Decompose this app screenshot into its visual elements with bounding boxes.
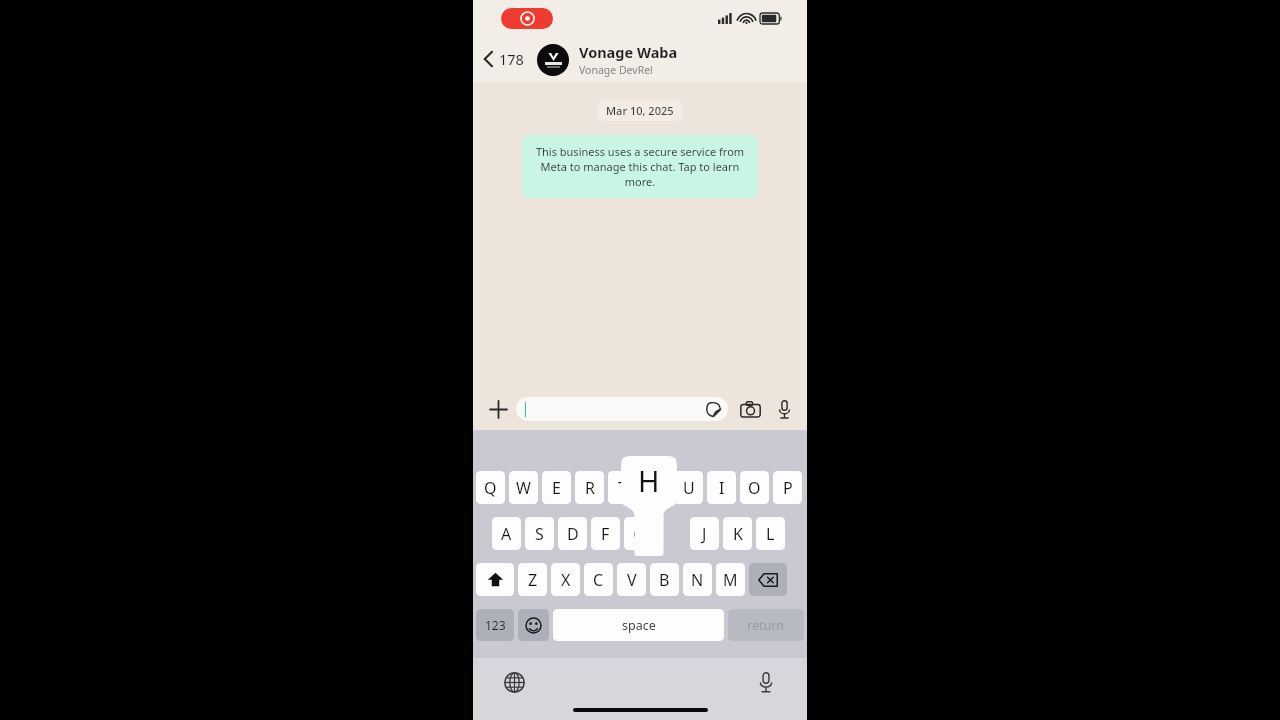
button[interactable]: This business uses a secure service from… [522,135,758,198]
staticText: 123 [485,617,506,633]
staticText: Z [528,569,538,591]
button[interactable]: V [617,563,646,596]
button[interactable]: Change keyboard language [498,666,530,698]
button[interactable]: L [756,517,785,550]
button[interactable]: Vonage Waba [537,42,807,77]
staticText: H [638,461,660,500]
button[interactable]: S [525,517,554,550]
button[interactable]: space [553,609,724,641]
button[interactable]: W [509,471,538,504]
button[interactable]: I [707,471,736,504]
staticText: space [622,617,656,634]
button[interactable]: Recording indicator [501,8,553,29]
button[interactable]: Voice message [770,395,798,423]
staticText: J [702,523,707,545]
button[interactable]: F [591,517,620,550]
button[interactable]: N [683,563,712,596]
button[interactable]: Z [518,563,547,596]
staticText: 178 [499,49,524,69]
button[interactable]: G [624,517,653,550]
staticText: D [567,523,579,545]
staticText: L [766,523,775,545]
staticText: F [601,523,610,545]
button[interactable]: O [740,471,769,504]
button[interactable]: return [728,609,804,641]
staticText: T [618,477,627,499]
staticText: return [747,617,785,634]
staticText: Mar 10, 2025 [606,103,674,118]
button[interactable]: X [551,563,580,596]
button[interactable]: A [492,517,521,550]
button[interactable]: Attach [483,394,513,424]
button[interactable]: P [773,471,802,504]
button[interactable]: Dictation [750,666,782,698]
button[interactable]: Q [476,471,505,504]
button[interactable]: R [575,471,604,504]
staticText: E [552,477,561,499]
staticText: Vonage DevRel [579,63,653,77]
staticText: P [783,477,793,499]
staticText: W [516,477,531,499]
staticText: I [719,477,725,499]
button[interactable]: 123 [476,609,514,641]
button[interactable]: T [608,471,637,504]
staticText: M [723,569,738,591]
staticText: This business uses a secure service from… [530,144,750,189]
staticText: A [501,523,512,545]
button[interactable]: Shift [476,563,514,596]
button[interactable]: E [542,471,571,504]
button[interactable]: Camera [736,395,764,423]
button[interactable] [657,517,686,550]
staticText: G [633,523,645,545]
button[interactable] [641,471,670,504]
staticText: N [691,569,704,591]
button[interactable] [516,397,728,421]
staticText: Q [484,477,497,499]
staticText: B [659,569,670,591]
button[interactable]: M [716,563,745,596]
staticText: R [585,477,595,499]
button[interactable]: Emoji [518,609,549,641]
button[interactable]: Backspace [749,563,787,596]
staticText: Vonage Waba [579,42,678,62]
staticText: S [535,523,544,545]
staticText: V [627,569,637,591]
button[interactable]: U [674,471,703,504]
button[interactable]: C [584,563,613,596]
staticText: C [593,569,604,591]
button[interactable]: K [723,517,752,550]
button[interactable]: 178 [479,45,528,73]
button[interactable]: J [690,517,719,550]
staticText: K [733,523,743,545]
staticText: U [683,477,695,499]
button[interactable]: D [558,517,587,550]
staticText: O [748,477,761,499]
staticText: X [561,569,571,591]
button[interactable]: B [650,563,679,596]
